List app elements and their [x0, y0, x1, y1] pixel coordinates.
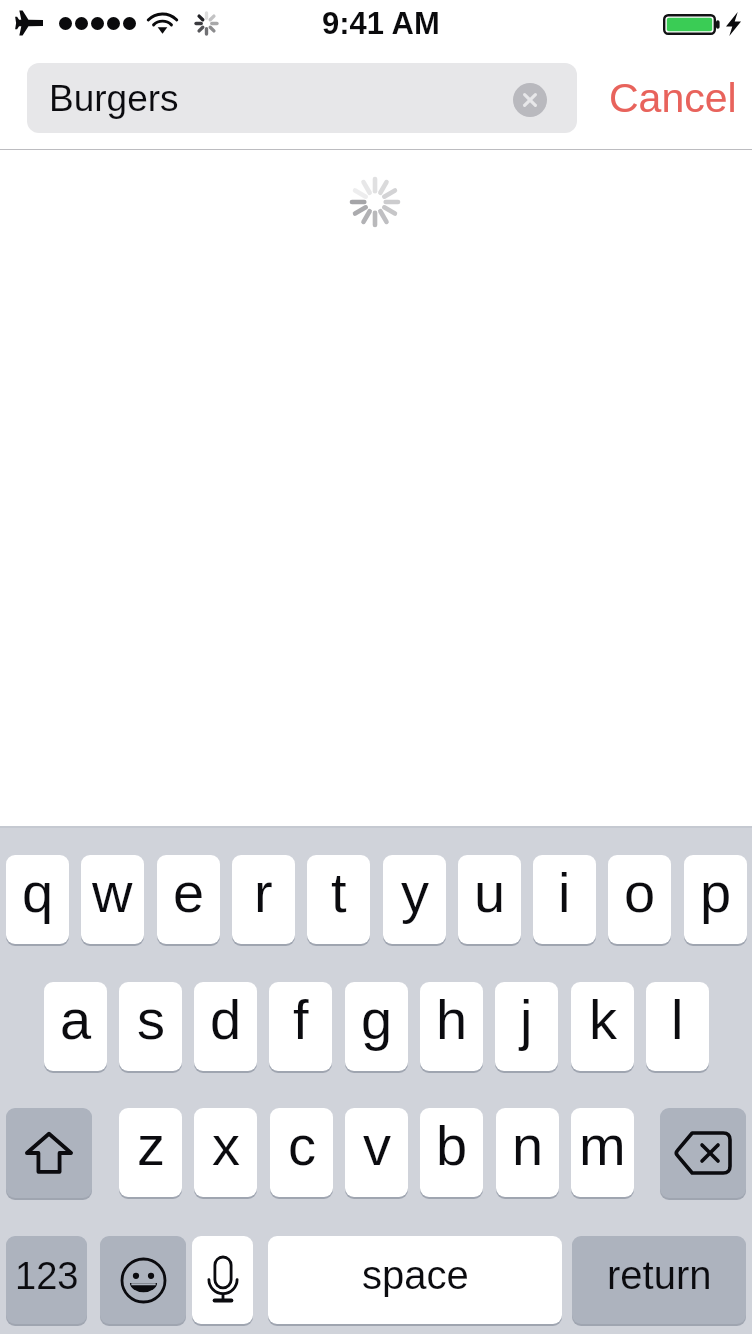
staticText: n [512, 1114, 544, 1177]
button[interactable]: d [194, 982, 257, 1071]
button[interactable]: r [232, 855, 295, 944]
button[interactable]: t [307, 855, 370, 944]
staticText: y [401, 861, 429, 924]
staticText: Cancel [609, 75, 737, 121]
staticText: space [362, 1253, 469, 1298]
button[interactable]: c [270, 1108, 333, 1197]
staticText: c [288, 1114, 316, 1177]
button[interactable]: i [533, 855, 596, 944]
staticText: g [361, 988, 393, 1051]
button[interactable]: Dictate [192, 1236, 253, 1324]
staticText: o [624, 861, 656, 924]
staticText: m [579, 1114, 626, 1177]
staticText: b [436, 1114, 468, 1177]
staticText: a [60, 988, 92, 1051]
button[interactable]: w [81, 855, 144, 944]
button[interactable]: Emoji [100, 1236, 186, 1324]
button[interactable]: e [157, 855, 220, 944]
button[interactable]: j [495, 982, 558, 1071]
staticText: p [700, 861, 732, 924]
staticText: t [331, 861, 347, 924]
button[interactable]: u [458, 855, 521, 944]
button[interactable]: g [345, 982, 408, 1071]
button[interactable]: Cancel [600, 63, 745, 133]
button[interactable]: z [119, 1108, 182, 1197]
staticText: z [137, 1114, 165, 1177]
staticText: return [607, 1253, 712, 1298]
button[interactable]: m [571, 1108, 634, 1197]
staticText: d [210, 988, 242, 1051]
button[interactable]: q [6, 855, 69, 944]
staticText: v [363, 1114, 391, 1177]
button[interactable]: v [345, 1108, 408, 1197]
staticText: u [474, 861, 506, 924]
staticText: Burgers [49, 78, 179, 119]
button[interactable]: return [572, 1236, 746, 1324]
button[interactable]: Backspace [660, 1108, 746, 1198]
button[interactable]: Shift [6, 1108, 92, 1198]
button[interactable]: space [268, 1236, 562, 1324]
staticText: j [520, 988, 533, 1051]
staticText: x [212, 1114, 240, 1177]
staticText: w [92, 861, 133, 924]
button[interactable]: Burgers [27, 63, 577, 133]
button[interactable]: x [194, 1108, 257, 1197]
staticText: r [254, 861, 273, 924]
button[interactable]: a [44, 982, 107, 1071]
staticText: e [173, 861, 205, 924]
button[interactable]: o [608, 855, 671, 944]
staticText: l [671, 988, 684, 1051]
staticText: k [589, 988, 617, 1051]
staticText: q [22, 861, 54, 924]
staticText: f [293, 988, 309, 1051]
button[interactable]: k [571, 982, 634, 1071]
staticText: 9:41 AM [322, 6, 440, 41]
button[interactable]: h [420, 982, 483, 1071]
button[interactable]: Clear text [513, 83, 547, 117]
staticText: 123 [15, 1255, 79, 1297]
staticText: s [137, 988, 165, 1051]
button[interactable]: y [383, 855, 446, 944]
button[interactable]: l [646, 982, 709, 1071]
button[interactable]: f [269, 982, 332, 1071]
staticText: i [558, 861, 571, 924]
button[interactable]: n [496, 1108, 559, 1197]
button[interactable]: s [119, 982, 182, 1071]
staticText: h [436, 988, 468, 1051]
button[interactable]: b [420, 1108, 483, 1197]
button[interactable]: 123 [6, 1236, 87, 1324]
button[interactable]: p [684, 855, 747, 944]
